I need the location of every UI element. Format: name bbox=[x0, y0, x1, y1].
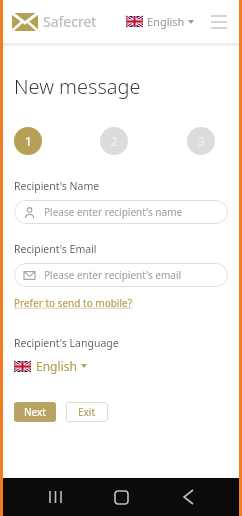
staticText: Safecret bbox=[43, 12, 97, 31]
button[interactable]: Safecret bbox=[12, 12, 97, 31]
staticText: Next bbox=[24, 405, 46, 419]
staticText: 3 bbox=[198, 133, 205, 149]
button[interactable]: Back bbox=[173, 482, 203, 512]
button[interactable]: Menu bbox=[208, 11, 230, 33]
staticText: Recipient's Name bbox=[14, 179, 100, 193]
staticText: 1 bbox=[25, 133, 32, 149]
button[interactable]: 3 bbox=[187, 127, 215, 155]
staticText: Please enter recipient's email bbox=[44, 268, 182, 282]
staticText: English bbox=[36, 358, 77, 374]
button[interactable]: Exit bbox=[66, 402, 108, 422]
staticText: Recipient's Email bbox=[14, 242, 97, 256]
button[interactable]: Prefer to send to mobile? bbox=[14, 296, 132, 310]
staticText: Prefer to send to mobile? bbox=[14, 296, 132, 310]
button[interactable]: English bbox=[14, 358, 87, 374]
button[interactable]: Please enter recipient's name bbox=[14, 200, 228, 224]
button[interactable]: Next bbox=[14, 402, 56, 422]
button[interactable]: English bbox=[124, 14, 196, 29]
staticText: English bbox=[147, 14, 185, 29]
button[interactable]: Please enter recipient's email bbox=[14, 263, 228, 287]
button[interactable]: Recents bbox=[40, 482, 70, 512]
staticText: Recipient's Language bbox=[14, 336, 119, 350]
staticText: Please enter recipient's name bbox=[44, 205, 183, 219]
button[interactable]: 1 bbox=[14, 127, 42, 155]
button[interactable]: 2 bbox=[100, 127, 128, 155]
staticText: Exit bbox=[78, 405, 96, 419]
staticText: New message bbox=[14, 73, 141, 100]
staticText: 2 bbox=[111, 133, 118, 149]
button[interactable]: Home bbox=[106, 482, 136, 512]
